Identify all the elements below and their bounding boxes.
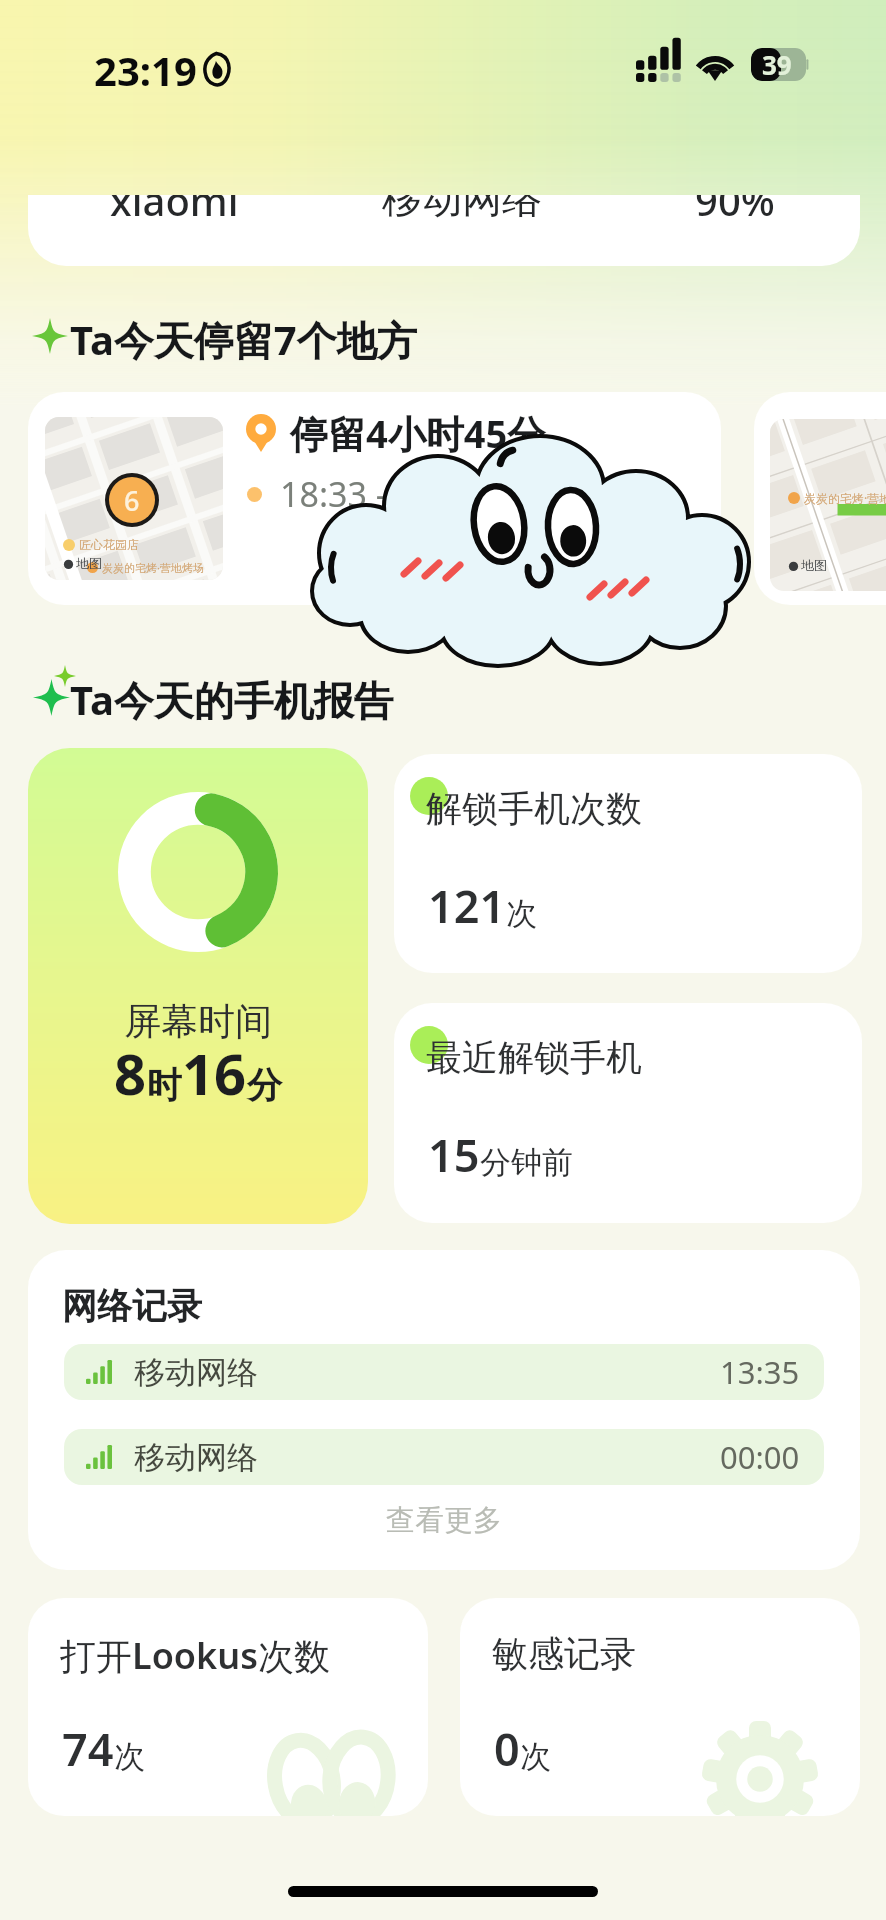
button[interactable]: 移动网络: [64, 1429, 824, 1485]
staticText: 23:19: [94, 43, 197, 97]
staticText: 移动网络: [134, 1353, 258, 1392]
staticText: 0: [494, 1718, 520, 1779]
button[interactable]: 最近解锁手机: [394, 1003, 862, 1223]
staticText: 6: [124, 482, 140, 519]
staticText: 网络记录: [62, 1284, 202, 1328]
button[interactable]: 6: [28, 392, 721, 605]
staticText: 15: [428, 1124, 480, 1185]
staticText: 39: [762, 48, 792, 80]
staticText: 74: [62, 1718, 114, 1779]
staticText: 匠心花园店: [79, 537, 139, 552]
button[interactable]: 移动网络: [64, 1344, 824, 1400]
staticText: 移动网络: [134, 1438, 258, 1477]
staticText: 时: [147, 1063, 182, 1107]
staticText: 最近解锁手机: [426, 1035, 642, 1080]
other: Wi-Fi: [694, 50, 736, 81]
staticText: 屏幕时间: [124, 998, 272, 1045]
button[interactable]: 屏幕时间: [28, 748, 368, 1224]
staticText: 解锁手机次数: [426, 786, 642, 831]
staticText: 地图: [76, 555, 102, 571]
staticText: Ta今天的手机报告: [70, 672, 394, 727]
button[interactable]: 敏感记录: [460, 1598, 860, 1816]
staticText: 分钟前: [480, 1143, 573, 1182]
staticText: 炭炭的宅烤·营地: [804, 490, 886, 506]
staticText: 地图: [801, 557, 827, 573]
staticText: 13:35: [720, 1351, 800, 1393]
staticText: 移动网络: [382, 195, 542, 223]
other: Signal: [636, 50, 681, 82]
staticText: 121: [428, 875, 506, 936]
staticText: 次: [114, 1737, 145, 1776]
other: Home: [288, 1886, 598, 1897]
staticText: 8: [114, 1035, 147, 1111]
staticText: 90%: [695, 195, 775, 227]
staticText: 分: [247, 1063, 282, 1107]
staticText: 次: [506, 894, 537, 933]
staticText: 次: [520, 1737, 551, 1776]
staticText: 00:00: [720, 1436, 800, 1478]
button[interactable]: 打开Lookus次数: [28, 1598, 428, 1816]
staticText: 炭炭的宅烤·营地烤场: [102, 560, 204, 575]
staticText: 停留4小时45分: [290, 407, 546, 459]
staticText: 敏感记录: [492, 1631, 636, 1676]
staticText: 查看更多: [386, 1502, 502, 1539]
staticText: 16: [182, 1035, 247, 1111]
staticText: Ta今天停留7个地方: [70, 312, 417, 367]
other: Battery 39 percent: [751, 48, 809, 81]
button[interactable]: 解锁手机次数: [394, 754, 862, 973]
staticText: 18:33 - 23:18: [280, 471, 483, 517]
staticText: xiaomi: [110, 195, 239, 227]
staticText: 打开Lookus次数: [60, 1631, 330, 1680]
button[interactable]: xiaomi: [28, 195, 860, 266]
button[interactable]: 炭炭的宅烤·营地: [754, 392, 886, 605]
